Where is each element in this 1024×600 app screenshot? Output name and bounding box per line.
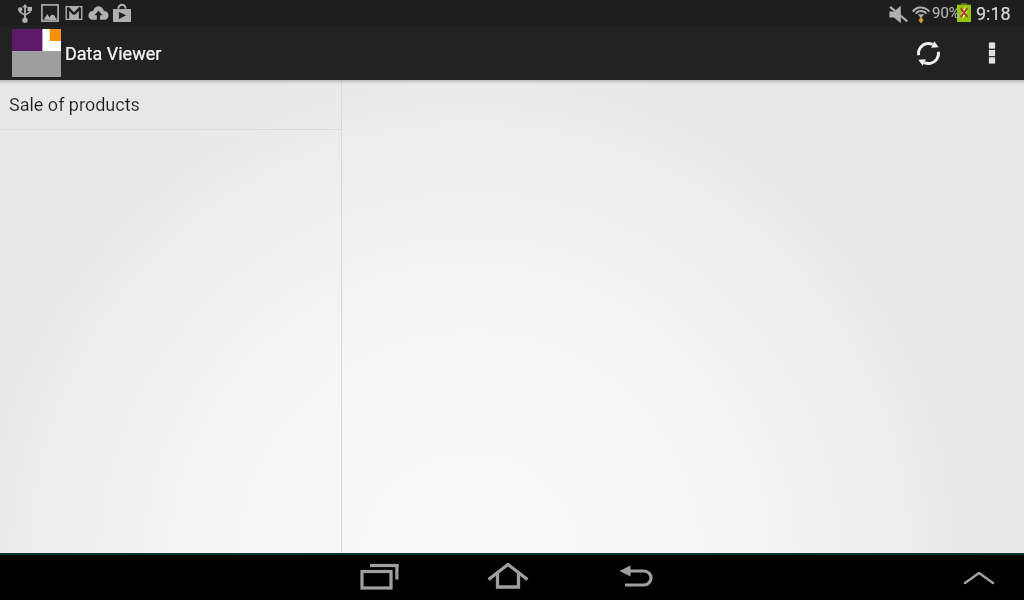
button[interactable]: Show keyboard — [944, 555, 1014, 600]
button[interactable]: Back — [596, 555, 676, 600]
button[interactable]: Home — [468, 555, 548, 600]
staticText: Sale of products — [9, 94, 140, 115]
staticText: 9:18 — [976, 3, 1011, 24]
button[interactable]: Sale of products — [0, 80, 341, 129]
staticText: 90% — [932, 4, 960, 22]
button[interactable]: Refresh — [888, 26, 968, 80]
button[interactable]: More options — [968, 26, 1016, 80]
staticText: Data Viewer — [65, 43, 162, 64]
button[interactable]: Recents — [340, 555, 420, 600]
